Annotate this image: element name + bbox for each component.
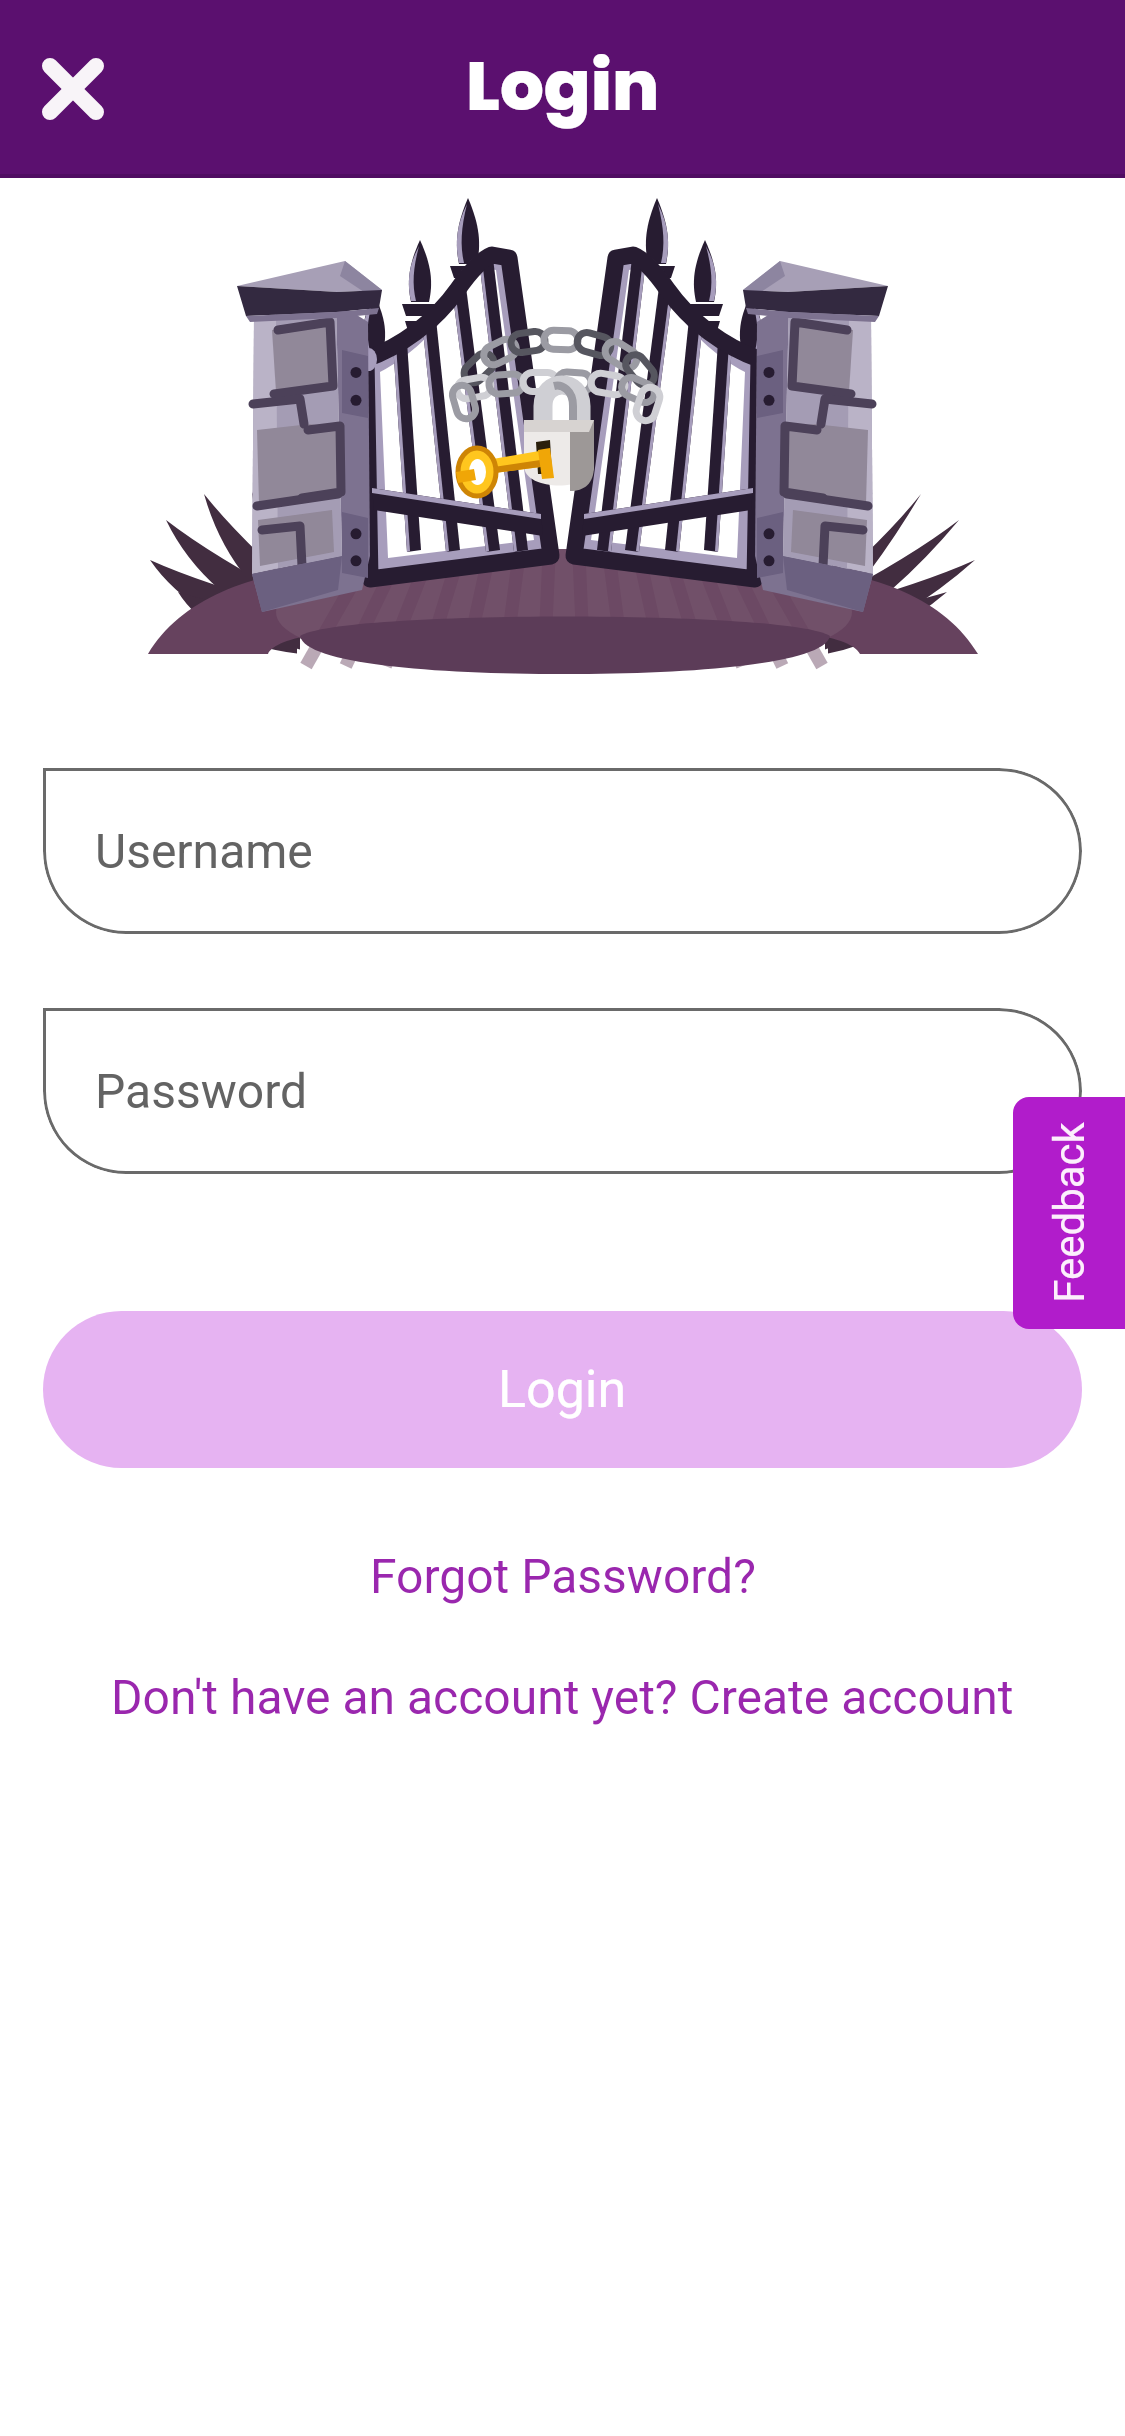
staticText: Feedback: [1045, 1122, 1094, 1303]
staticText: Username: [95, 823, 313, 879]
button[interactable]: Close: [42, 58, 104, 120]
staticText: Login: [466, 38, 660, 135]
staticText: Login: [498, 1359, 627, 1420]
button[interactable]: Password: [43, 1008, 1082, 1174]
staticText: Password: [95, 1063, 308, 1119]
staticText: Forgot Password?: [370, 1548, 756, 1604]
button[interactable]: Username: [43, 768, 1082, 934]
button[interactable]: Don't have an account yet? Create accoun…: [0, 1669, 1125, 1725]
staticText: Don't have an account yet? Create accoun…: [111, 1669, 1014, 1725]
button[interactable]: Forgot Password?: [0, 1548, 1125, 1604]
button[interactable]: Feedback: [1013, 1097, 1125, 1329]
button[interactable]: Login: [43, 1311, 1082, 1468]
